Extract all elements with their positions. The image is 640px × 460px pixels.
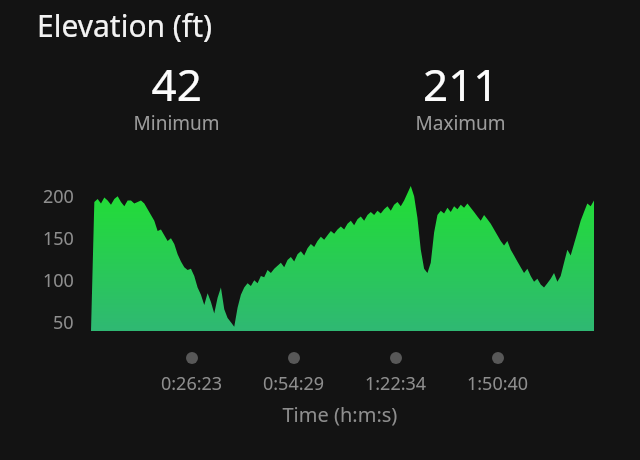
button[interactable] (0, 0, 640, 460)
